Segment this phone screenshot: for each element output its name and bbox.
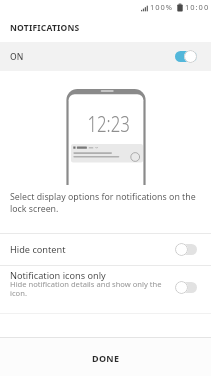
staticText: Select display options for notifications… [10,191,201,214]
staticText: 10:00 [185,2,210,12]
staticText: 12:23 [87,110,131,139]
button[interactable]: DONE [0,338,211,376]
button[interactable]: Hide content [0,234,211,265]
button[interactable] [175,243,197,256]
button[interactable]: Notification icons only [0,266,211,313]
button[interactable]: ON [0,42,211,71]
staticText: NOTIFICATIONS [10,22,80,34]
button[interactable] [175,50,197,63]
staticText: Hide notification details and show only … [10,279,162,298]
staticText: Notification icons only [10,269,106,282]
staticText: 100% [150,2,174,12]
staticText: Hide content [10,243,66,256]
staticText: DONE [92,352,120,364]
button[interactable] [175,281,197,294]
staticText: ON [10,51,24,63]
